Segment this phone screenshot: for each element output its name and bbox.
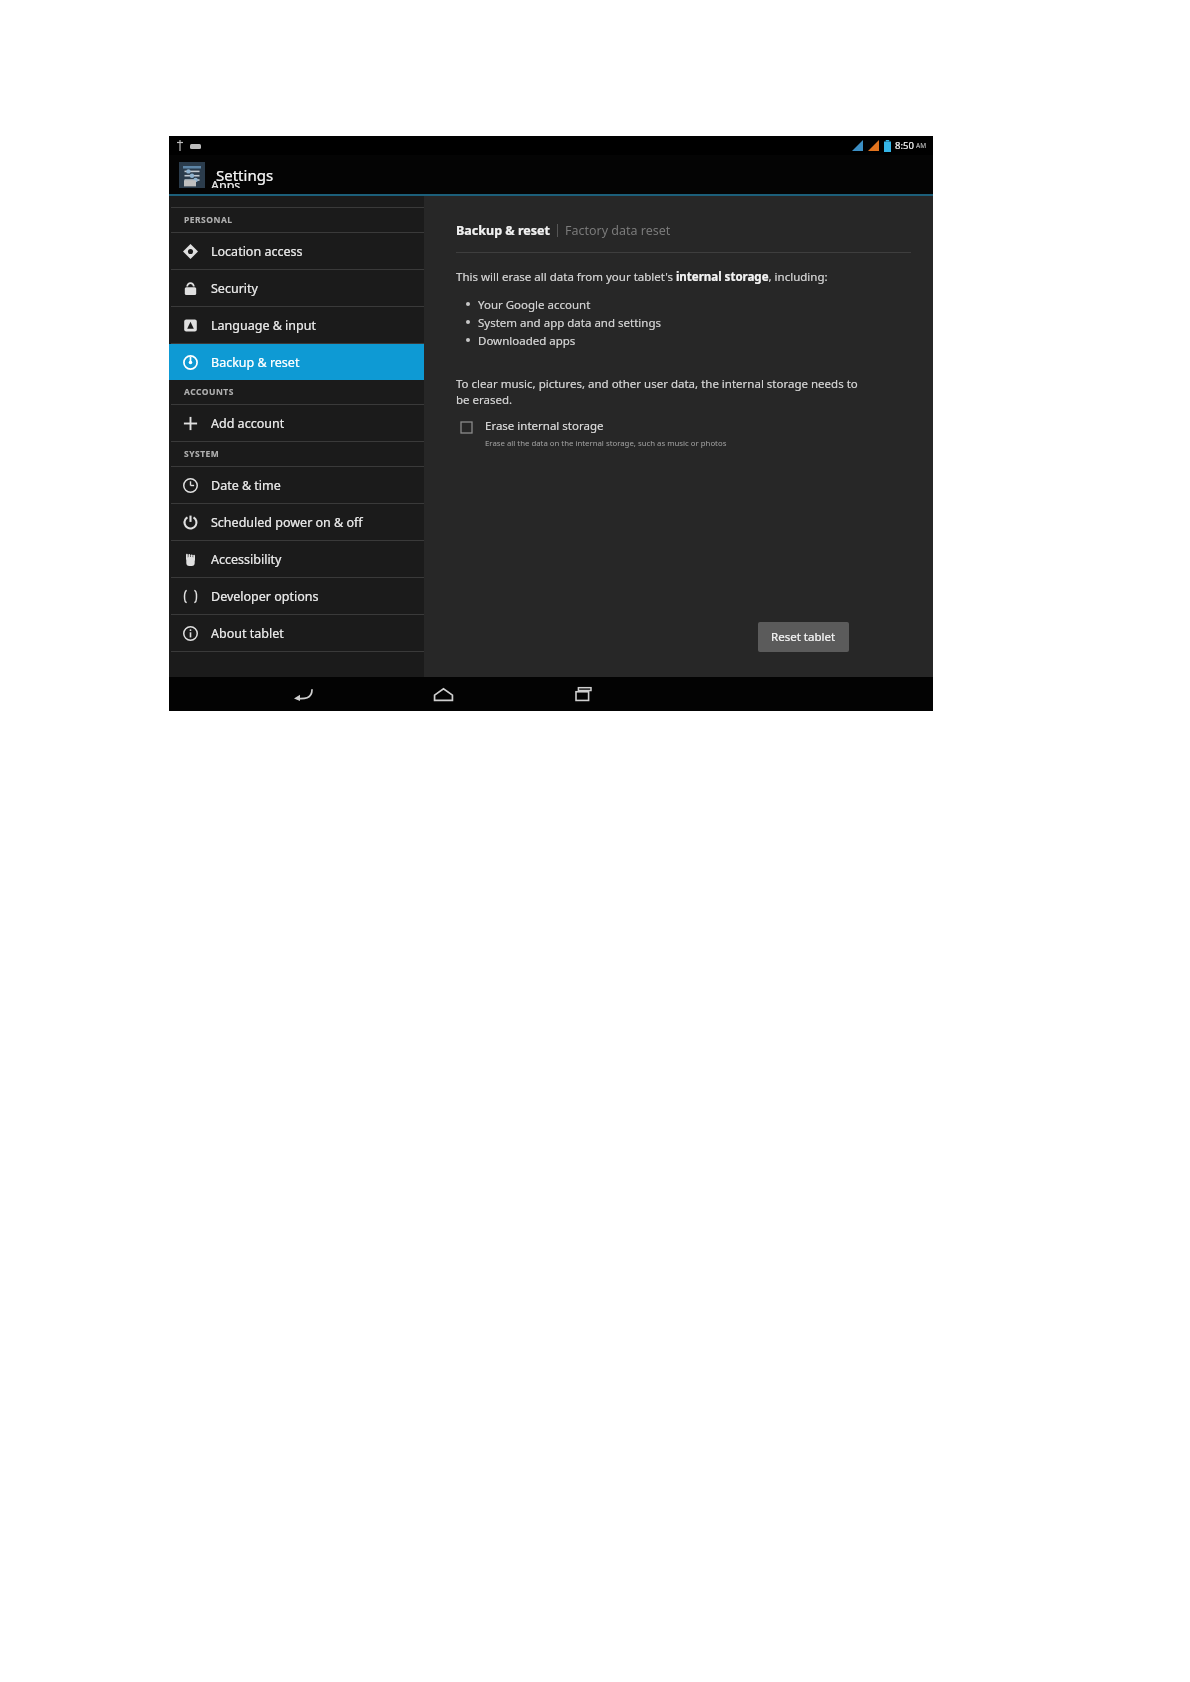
staticText: Location access (211, 243, 303, 260)
button[interactable]: Location access (169, 233, 424, 269)
staticText: ACCOUNTS (184, 386, 234, 398)
staticText: 8:50 (895, 139, 914, 152)
staticText: Downloaded apps (478, 333, 576, 349)
staticText: Date & time (211, 477, 281, 494)
button[interactable]: Accessibility (169, 541, 424, 577)
button[interactable]: Back (281, 677, 325, 711)
staticText: Settings (216, 165, 274, 185)
button[interactable]: Recent apps (561, 677, 605, 711)
button[interactable]: Date & time (169, 467, 424, 503)
staticText: Reset tablet (771, 629, 836, 645)
staticText: Erase internal storage (485, 418, 604, 434)
staticText: Language & input (211, 317, 316, 334)
staticText: This will erase all data from your table… (456, 269, 828, 285)
staticText: Erase all the data on the internal stora… (485, 438, 727, 449)
button[interactable]: Language & input (169, 307, 424, 343)
button[interactable]: Reset tablet (758, 622, 849, 652)
button[interactable]: About tablet (169, 615, 424, 651)
staticText: SYSTEM (184, 448, 220, 460)
button[interactable]: Developer options (169, 578, 424, 614)
button[interactable]: Add account (169, 405, 424, 441)
staticText: Add account (211, 415, 285, 432)
staticText: Developer options (211, 588, 319, 605)
staticText: Security (211, 280, 258, 297)
staticText: System and app data and settings (478, 315, 661, 331)
button[interactable]: Home (421, 677, 465, 711)
staticText: Apps (211, 177, 241, 188)
button[interactable]: Erase internal storage (456, 416, 731, 451)
staticText: Backup & reset (211, 354, 300, 371)
staticText: Accessibility (211, 551, 282, 568)
button[interactable]: Backup & reset (169, 344, 424, 380)
staticText: Scheduled power on & off (211, 514, 363, 531)
button[interactable]: Backup & reset (456, 222, 550, 239)
button[interactable]: Security (169, 270, 424, 306)
staticText: AM (916, 141, 927, 150)
staticText: To clear music, pictures, and other user… (456, 376, 858, 407)
staticText: About tablet (211, 625, 284, 642)
staticText: PERSONAL (184, 214, 233, 226)
button[interactable]: Factory data reset (565, 222, 671, 239)
button[interactable]: Scheduled power on & off (169, 504, 424, 540)
staticText: Your Google account (478, 297, 591, 313)
